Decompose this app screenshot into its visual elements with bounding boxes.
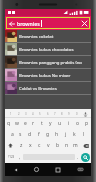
button[interactable]: Clear search xyxy=(79,18,90,29)
staticText: 3 xyxy=(25,112,27,116)
button[interactable]: v xyxy=(44,140,53,151)
button[interactable]: Backspace xyxy=(80,140,91,151)
button[interactable]: Comma xyxy=(17,151,23,163)
staticText: i xyxy=(68,120,70,127)
button[interactable]: c xyxy=(35,140,44,151)
staticText: . xyxy=(77,154,79,160)
staticText: g xyxy=(46,131,50,138)
staticText: y xyxy=(49,120,52,127)
button[interactable]: Recents xyxy=(47,163,69,176)
button[interactable]: g xyxy=(43,129,52,140)
staticText: 4 xyxy=(32,112,34,116)
staticText: f xyxy=(38,131,40,138)
button[interactable]: Coklat vs Brownies xyxy=(5,82,91,94)
button[interactable]: Brownies kukus chocolatos xyxy=(5,43,91,55)
button[interactable]: Back xyxy=(6,18,17,29)
staticText: m xyxy=(73,142,78,149)
button[interactable]: Brownies cokelat xyxy=(5,30,91,42)
staticText: 0 xyxy=(76,112,78,116)
button[interactable]: m xyxy=(71,140,80,151)
staticText: n xyxy=(65,142,69,149)
button[interactable]: d xyxy=(25,129,34,140)
staticText: Brownies kukus chocolatos xyxy=(19,46,74,52)
staticText: 5 xyxy=(39,112,41,116)
button[interactable]: o xyxy=(73,118,82,129)
staticText: e xyxy=(24,120,27,127)
staticText: r xyxy=(32,120,35,127)
button[interactable]: n xyxy=(62,140,71,151)
staticText: b xyxy=(56,142,60,149)
staticText: , xyxy=(19,154,21,160)
staticText: Coklat vs Brownies xyxy=(19,85,57,91)
button[interactable]: Voice input xyxy=(81,110,89,118)
staticText: 9 xyxy=(68,112,70,116)
button[interactable]: i xyxy=(64,118,73,129)
button[interactable]: x xyxy=(26,140,35,151)
staticText: w xyxy=(15,120,19,127)
staticText: s xyxy=(19,131,22,138)
button[interactable]: p xyxy=(82,118,91,129)
button[interactable]: y xyxy=(46,118,55,129)
button[interactable]: ?123 xyxy=(6,151,17,163)
staticText: t xyxy=(41,120,43,127)
staticText: h xyxy=(55,131,59,138)
button[interactable]: Brownies panggang praktis (no mixer) xyxy=(5,56,91,68)
button[interactable]: f xyxy=(34,129,43,140)
staticText: ?123 xyxy=(8,155,15,159)
staticText: u xyxy=(58,120,62,127)
staticText: Brownies panggang praktis (no mixer) xyxy=(19,59,91,65)
button[interactable]: Search xyxy=(81,153,90,162)
staticText: 7 xyxy=(54,112,56,116)
staticText: Brownies cokelat xyxy=(19,33,54,39)
button[interactable]: Hide keyboard xyxy=(69,163,91,176)
staticText: q xyxy=(7,120,11,127)
button[interactable]: Home xyxy=(26,163,47,176)
button[interactable]: Shift xyxy=(5,140,16,151)
button[interactable]: Period xyxy=(75,151,81,163)
button[interactable]: Back xyxy=(5,163,26,176)
staticText: 1 xyxy=(10,112,12,116)
staticText: a xyxy=(11,131,14,138)
staticText: x xyxy=(29,142,32,149)
staticText: Brownies kukus No mixer xyxy=(19,72,71,78)
button[interactable]: z xyxy=(16,140,26,151)
staticText: brownies xyxy=(17,20,40,27)
staticText: j xyxy=(65,131,67,138)
staticText: p xyxy=(85,120,89,127)
button[interactable]: u xyxy=(55,118,64,129)
button[interactable]: a xyxy=(8,129,16,140)
button[interactable]: h xyxy=(52,129,61,140)
staticText: 6 xyxy=(47,112,49,116)
staticText: z xyxy=(20,142,23,149)
staticText: 2 xyxy=(18,112,20,116)
button[interactable]: b xyxy=(53,140,62,151)
staticText: v xyxy=(47,142,50,149)
staticText: k xyxy=(73,131,76,138)
button[interactable]: w xyxy=(13,118,21,129)
staticText: c xyxy=(38,142,41,149)
button[interactable]: l xyxy=(79,129,88,140)
button[interactable]: e xyxy=(21,118,29,129)
staticText: l xyxy=(83,131,85,138)
staticText: o xyxy=(76,120,80,127)
staticText: 8 xyxy=(61,112,63,116)
button[interactable]: t xyxy=(37,118,46,129)
button[interactable]: j xyxy=(61,129,70,140)
button[interactable]: k xyxy=(70,129,79,140)
button[interactable]: r xyxy=(29,118,37,129)
staticText: d xyxy=(28,131,32,138)
button[interactable]: Brownies kukus No mixer xyxy=(5,69,91,81)
button[interactable]: s xyxy=(16,129,25,140)
button[interactable]: q xyxy=(5,118,13,129)
